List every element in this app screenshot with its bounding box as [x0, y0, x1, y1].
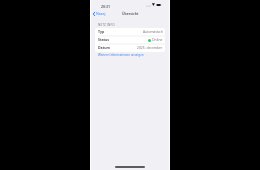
staticText: NETZ INFO — [98, 23, 115, 27]
staticText: Status — [98, 37, 110, 42]
staticText: Automatisch — [143, 29, 163, 34]
staticText: 20:31 — [101, 4, 110, 9]
staticText: Nazaj — [96, 11, 106, 16]
staticText: Übersicht — [122, 11, 139, 16]
button[interactable]: Typ — [95, 28, 165, 36]
staticText: Typ — [98, 29, 105, 34]
other: Status icons — [146, 3, 162, 7]
staticText: 2025. december — [137, 45, 163, 50]
button[interactable]: Datum — [95, 44, 165, 52]
staticText: Datum — [98, 45, 110, 50]
button[interactable]: Back — [93, 11, 106, 16]
staticText: Online — [152, 37, 163, 42]
button[interactable]: Status — [95, 36, 165, 44]
button[interactable]: Weitere Informationen anzeigen — [98, 53, 144, 57]
